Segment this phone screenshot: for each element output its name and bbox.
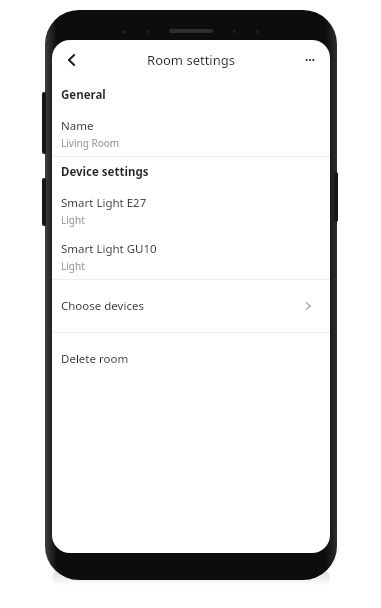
staticText: Delete room	[61, 351, 129, 367]
staticText: General	[61, 87, 106, 103]
button[interactable]: More options	[290, 40, 330, 80]
button[interactable]: Smart Light E27	[52, 187, 330, 233]
staticText: Light	[61, 213, 85, 227]
staticText: Name	[61, 118, 94, 134]
staticText: Room settings	[52, 51, 330, 69]
button[interactable]: Name	[52, 110, 330, 156]
button[interactable]: Choose devices	[52, 280, 330, 332]
staticText: Smart Light GU10	[61, 241, 157, 257]
staticText: Smart Light E27	[61, 195, 147, 211]
button[interactable]: Back	[52, 40, 92, 80]
staticText: Device settings	[61, 164, 149, 180]
staticText: Living Room	[61, 136, 120, 150]
staticText: Choose devices	[61, 298, 144, 314]
button[interactable]: Smart Light GU10	[52, 233, 330, 279]
staticText: Light	[61, 259, 85, 273]
button[interactable]: Delete room	[52, 333, 330, 385]
